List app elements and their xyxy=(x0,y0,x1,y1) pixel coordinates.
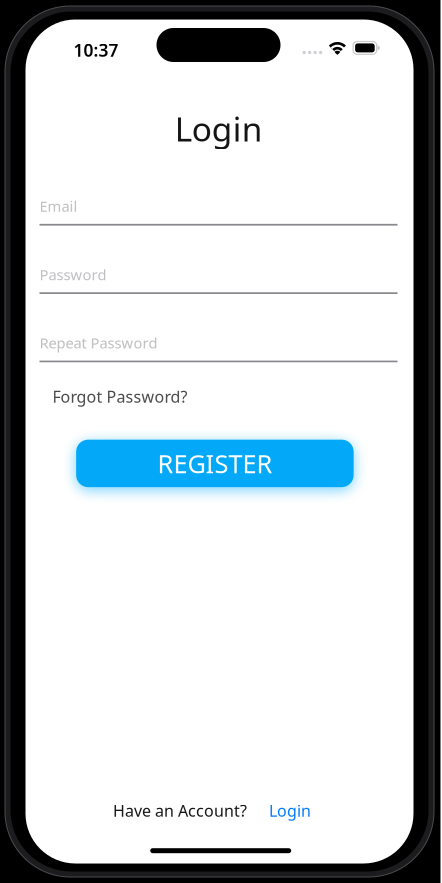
staticText: Login xyxy=(175,106,263,151)
button[interactable]: REGISTER xyxy=(76,440,354,487)
staticText: Forgot Password? xyxy=(52,386,187,407)
button[interactable]: Email xyxy=(39,196,397,226)
staticText: Repeat Password xyxy=(39,333,157,353)
button[interactable]: Login xyxy=(269,800,311,821)
staticText: Email xyxy=(39,196,77,216)
staticText: Password xyxy=(39,265,106,284)
button[interactable]: Password xyxy=(39,265,397,294)
staticText: REGISTER xyxy=(157,447,272,480)
staticText: Have an Account? xyxy=(113,800,247,821)
button[interactable]: Repeat Password xyxy=(39,333,397,362)
staticText: 10:37 xyxy=(73,38,118,61)
staticText: Login xyxy=(269,800,311,821)
button[interactable]: Forgot Password? xyxy=(50,381,189,412)
